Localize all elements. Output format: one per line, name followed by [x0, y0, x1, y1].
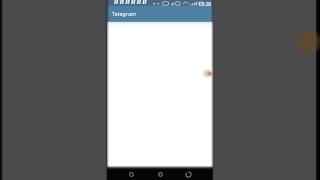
button[interactable]: Home	[154, 168, 166, 180]
staticText: 13:20	[198, 0, 212, 7]
button[interactable]: Back	[125, 168, 137, 180]
button[interactable]: Recent apps	[182, 168, 194, 180]
button[interactable]: Telegram	[112, 11, 137, 18]
